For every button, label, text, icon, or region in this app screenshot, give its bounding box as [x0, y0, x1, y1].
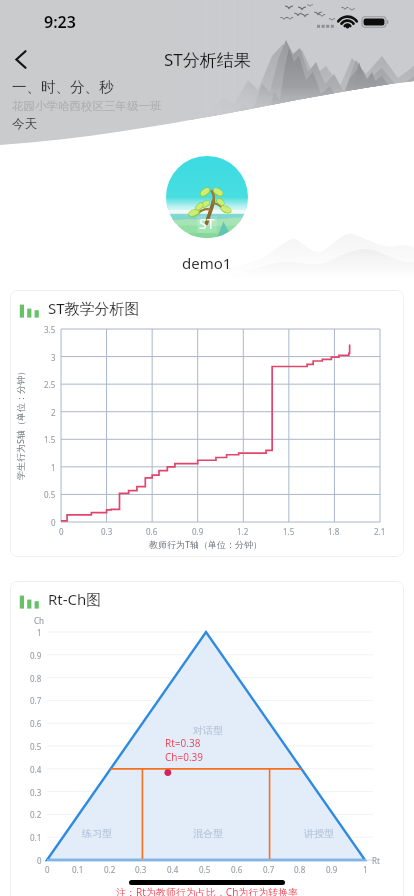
staticText: 0.4 [167, 864, 179, 875]
staticText: 1.2 [237, 526, 249, 537]
staticText: 0.8 [30, 673, 42, 684]
staticText: 1.5 [283, 526, 295, 537]
staticText: 今天 [12, 116, 37, 132]
staticText: demo1 [182, 253, 232, 273]
staticText: 0.8 [294, 864, 306, 875]
button[interactable]: Rt-Ch图 [10, 581, 404, 896]
staticText: 0.5 [199, 864, 211, 875]
staticText: 1.8 [328, 526, 340, 537]
staticText: 3.5 [44, 324, 56, 335]
staticText: Rt-Ch图 [48, 589, 102, 609]
staticText: 0.5 [30, 741, 42, 752]
button[interactable]: ST教学分析图 [10, 290, 404, 557]
staticText: 3 [51, 352, 56, 363]
staticText: 0.9 [192, 526, 204, 537]
staticText: 0.2 [104, 864, 116, 875]
staticText: 0.4 [30, 764, 42, 775]
staticText: 1 [363, 864, 368, 875]
staticText: Rt [372, 855, 380, 866]
staticText: 2.1 [374, 526, 386, 537]
staticText: Ch=0.39 [165, 750, 204, 764]
staticText: 0.1 [72, 864, 84, 875]
button[interactable]: Class avatar [166, 156, 248, 238]
staticText: 讲授型 [304, 827, 334, 840]
staticText: 0 [37, 855, 42, 866]
staticText: 0 [59, 526, 64, 537]
button[interactable]: Back [0, 42, 42, 76]
staticText: 1 [51, 462, 56, 473]
staticText: 0 [45, 864, 50, 875]
staticText: 一、时、分、秒 [12, 78, 114, 96]
staticText: 0.9 [30, 650, 42, 661]
staticText: 花园小学哈西校区三年级一班 [12, 99, 162, 113]
staticText: 教师行为T轴（单位：分钟） [149, 538, 263, 550]
staticText: ST [199, 214, 215, 233]
staticText: 0 [51, 517, 56, 528]
staticText: 练习型 [82, 827, 112, 840]
staticText: Rt=0.38 [165, 736, 201, 750]
staticText: 0.1 [30, 832, 42, 843]
staticText: 1.5 [44, 434, 56, 445]
staticText: 0.6 [231, 864, 243, 875]
staticText: 9:23 [44, 11, 76, 33]
staticText: 0.3 [30, 787, 42, 798]
staticText: 注：Rt为教师行为占比，Ch为行为转换率 [116, 885, 299, 896]
staticText: 0.3 [135, 864, 147, 875]
staticText: 0.7 [30, 695, 42, 706]
staticText: 混合型 [193, 827, 223, 840]
staticText: 0.6 [146, 526, 158, 537]
staticText: 1 [37, 627, 42, 638]
staticText: ST分析结果 [164, 48, 251, 71]
staticText: 0.2 [30, 809, 42, 820]
staticText: 对话型 [193, 724, 223, 737]
staticText: 2.5 [44, 379, 56, 390]
staticText: 2 [51, 407, 56, 418]
staticText: 学生行为S轴（单位：分钟） [14, 367, 26, 480]
staticText: 0.6 [30, 718, 42, 729]
staticText: Ch [34, 615, 44, 626]
staticText: 0.7 [263, 864, 275, 875]
staticText: ST教学分析图 [48, 298, 140, 318]
staticText: 0.5 [44, 489, 56, 500]
staticText: 0.9 [326, 864, 338, 875]
staticText: 0.3 [101, 526, 113, 537]
